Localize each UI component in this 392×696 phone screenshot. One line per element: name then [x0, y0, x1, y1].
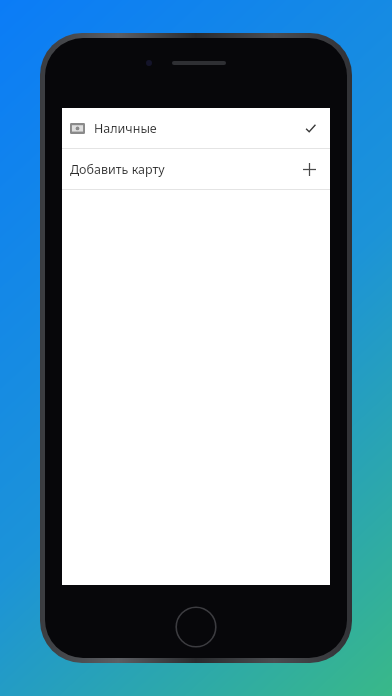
button[interactable]: Добавить карту	[62, 149, 330, 189]
other: Selected	[302, 120, 318, 136]
staticText: Наличные	[94, 120, 157, 137]
staticText: Добавить карту	[70, 161, 165, 178]
other: Home	[175, 606, 217, 648]
other: Add card	[300, 160, 318, 178]
button[interactable]: Cash	[62, 108, 330, 148]
other: Cash	[70, 123, 85, 134]
